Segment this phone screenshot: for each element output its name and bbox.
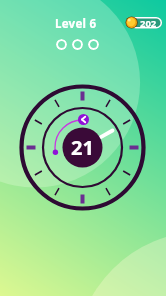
button[interactable] [88, 39, 99, 50]
button[interactable] [56, 39, 67, 50]
staticText: 21 [71, 134, 94, 161]
button[interactable]: Back [78, 114, 89, 125]
button[interactable]: 202 [124, 16, 162, 29]
button[interactable] [72, 39, 83, 50]
staticText: 202 [140, 17, 157, 30]
staticText: Level 6 [55, 16, 97, 32]
